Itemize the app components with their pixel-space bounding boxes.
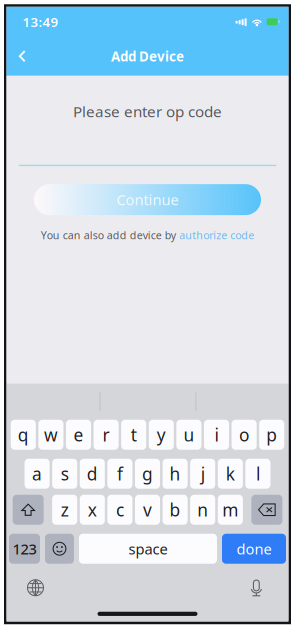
staticText: z (61, 498, 69, 521)
button[interactable]: j (190, 459, 215, 489)
button[interactable]: v (135, 495, 160, 525)
button[interactable]: l (245, 459, 270, 489)
button[interactable]: u (176, 420, 201, 450)
staticText: m (222, 498, 238, 521)
staticText: k (226, 462, 235, 485)
staticText: p (266, 423, 277, 446)
button[interactable]: t (121, 420, 146, 450)
staticText: authorize code (179, 228, 254, 242)
button[interactable]: Shift (13, 495, 44, 525)
staticText: c (116, 498, 124, 521)
staticText: v (143, 498, 152, 521)
staticText: n (197, 498, 208, 521)
button[interactable]: Emoji (45, 534, 74, 564)
button[interactable]: You can also add device by (41, 229, 254, 241)
button[interactable]: x (80, 495, 105, 525)
staticText: s (61, 462, 69, 485)
button[interactable]: i (204, 420, 229, 450)
button[interactable]: Delete (251, 495, 282, 525)
button[interactable]: d (80, 459, 105, 489)
button[interactable]: Switch keyboard (20, 576, 50, 600)
staticText: done (236, 539, 271, 559)
staticText: u (183, 423, 194, 446)
staticText: space (128, 539, 167, 559)
staticText: 13:49 (22, 13, 58, 31)
button[interactable]: e (66, 420, 91, 450)
button[interactable]: f (107, 459, 132, 489)
button[interactable]: s (52, 459, 77, 489)
button[interactable]: w (38, 420, 63, 450)
button[interactable]: 123 (9, 534, 40, 564)
staticText: b (170, 498, 181, 521)
staticText: y (157, 423, 166, 446)
staticText: 123 (12, 539, 36, 559)
button[interactable]: c (107, 495, 132, 525)
button[interactable]: n (190, 495, 215, 525)
staticText: f (117, 462, 123, 485)
button[interactable]: g (135, 459, 160, 489)
staticText: You can also add device by (41, 228, 176, 242)
button[interactable]: q (11, 420, 36, 450)
button[interactable]: r (94, 420, 119, 450)
staticText: w (44, 423, 58, 446)
staticText: r (103, 423, 110, 446)
staticText: Add Device (111, 47, 184, 65)
button[interactable]: z (52, 495, 77, 525)
button[interactable]: done (222, 534, 286, 564)
staticText: o (239, 423, 249, 446)
staticText: a (32, 462, 42, 485)
staticText: e (73, 423, 83, 446)
staticText: Please enter op code (73, 101, 222, 122)
staticText: x (88, 498, 97, 521)
staticText: i (214, 423, 218, 446)
staticText: g (142, 462, 153, 485)
staticText: Continue (116, 190, 178, 210)
button[interactable]: m (218, 495, 243, 525)
button[interactable]: b (162, 495, 188, 525)
button[interactable]: Back (6, 37, 38, 75)
staticText: d (87, 462, 98, 485)
button[interactable]: a (25, 459, 50, 489)
button[interactable]: o (231, 420, 257, 450)
button[interactable]: p (259, 420, 284, 450)
button[interactable]: k (218, 459, 243, 489)
button[interactable]: Continue (34, 184, 261, 215)
staticText: q (18, 423, 29, 446)
button[interactable]: Dictate (241, 576, 271, 600)
staticText: l (256, 462, 260, 485)
button[interactable]: space (79, 534, 217, 564)
button[interactable]: h (163, 459, 188, 489)
button[interactable]: y (149, 420, 174, 450)
staticText: t (131, 423, 137, 446)
staticText: h (170, 462, 181, 485)
staticText: j (201, 462, 205, 485)
